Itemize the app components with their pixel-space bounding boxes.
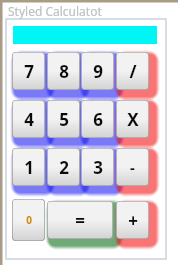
button[interactable]: 2 [47, 148, 80, 186]
staticText: 8 [59, 60, 69, 83]
button[interactable]: 4 [12, 100, 45, 138]
staticText: = [75, 209, 85, 232]
button[interactable]: 9 [81, 52, 114, 90]
button[interactable]: 0 [12, 199, 45, 241]
button[interactable]: 8 [47, 52, 80, 90]
staticText: 5 [59, 108, 69, 131]
staticText: 2 [59, 156, 69, 179]
button[interactable]: X [116, 100, 149, 138]
staticText: 4 [24, 108, 34, 131]
button[interactable]: 7 [12, 52, 45, 90]
staticText: 1 [24, 156, 34, 179]
staticText: + [128, 209, 138, 232]
staticText: / [129, 60, 137, 83]
button[interactable]: = [47, 201, 113, 239]
button[interactable]: - [116, 148, 149, 186]
staticText: - [130, 157, 135, 177]
button[interactable]: 3 [81, 148, 114, 186]
button[interactable]: 5 [47, 100, 80, 138]
staticText: Styled Calculatot [8, 3, 102, 19]
button[interactable]: 1 [12, 148, 45, 186]
button[interactable]: / [116, 52, 149, 90]
staticText: X [127, 108, 139, 131]
staticText: 6 [93, 108, 103, 131]
staticText: 7 [24, 60, 34, 83]
button[interactable]: + [116, 201, 149, 239]
staticText: 3 [93, 156, 103, 179]
staticText: 0 [26, 213, 32, 227]
button[interactable]: 6 [81, 100, 114, 138]
staticText: 9 [93, 60, 103, 83]
